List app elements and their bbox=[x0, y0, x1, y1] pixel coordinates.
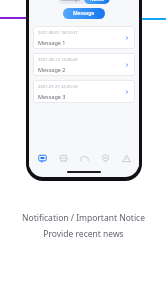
staticText: Message 3 bbox=[38, 93, 66, 100]
staticText: 2021-07-27 22:35:16 bbox=[38, 84, 78, 90]
staticText: Provide recent news bbox=[43, 228, 124, 240]
staticText: Message bbox=[73, 10, 95, 17]
button[interactable]: Bus bbox=[55, 150, 71, 166]
staticText: Message 2 bbox=[38, 66, 66, 73]
button[interactable]: 2021-08-12 13:28:26 bbox=[33, 53, 135, 76]
button[interactable]: Home bbox=[76, 150, 92, 166]
button[interactable]: 2021-08-01 18:12:37 bbox=[33, 26, 135, 49]
staticText: Message 1 bbox=[38, 39, 66, 46]
staticText: Notification / Important Notice bbox=[22, 212, 145, 224]
button[interactable]: Message bbox=[63, 8, 105, 19]
button[interactable]: Messages bbox=[34, 150, 50, 166]
button[interactable]: Location bbox=[97, 150, 113, 166]
button[interactable]: Message bbox=[58, 0, 84, 4]
staticText: 2021-08-01 18:12:37 bbox=[38, 30, 78, 36]
staticText: Message bbox=[61, 0, 81, 2]
button[interactable]: Notice bbox=[84, 0, 110, 4]
staticText: 2021-08-12 13:28:26 bbox=[38, 57, 78, 63]
staticText: Notice bbox=[90, 0, 104, 2]
button[interactable]: Alerts bbox=[118, 150, 134, 166]
button[interactable]: 2021-07-27 22:35:16 bbox=[33, 80, 135, 103]
